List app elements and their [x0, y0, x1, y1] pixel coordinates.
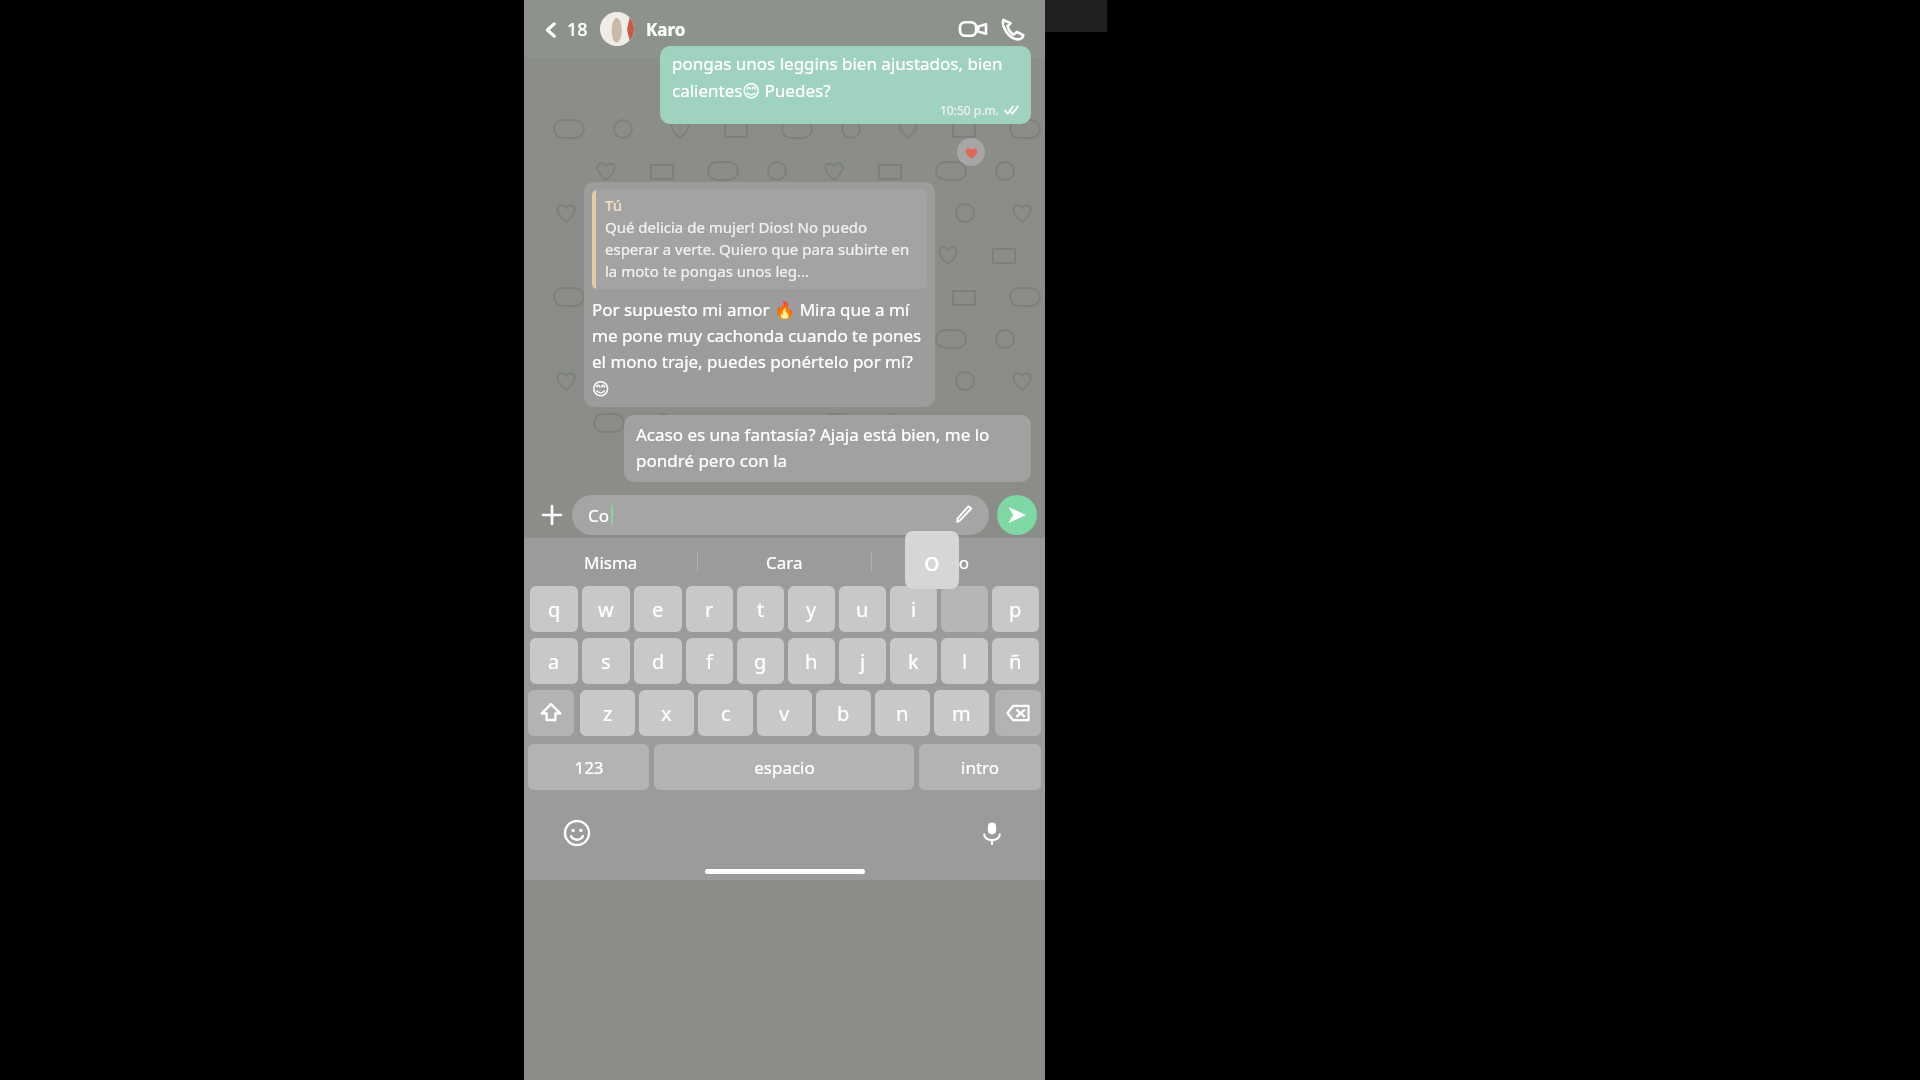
- button[interactable]: x: [639, 690, 694, 736]
- staticText: Misma: [584, 551, 638, 574]
- button[interactable]: h: [788, 638, 835, 684]
- staticText: Co: [588, 504, 610, 527]
- button[interactable]: Co: [872, 538, 1045, 586]
- staticText: Karo: [646, 18, 686, 41]
- button[interactable]: Co: [572, 495, 989, 535]
- button[interactable]: Send: [997, 495, 1037, 535]
- staticText: d: [652, 648, 665, 675]
- button[interactable]: n: [875, 690, 930, 736]
- staticText: f: [706, 648, 713, 675]
- staticText: y: [806, 596, 817, 623]
- button[interactable]: intro: [919, 744, 1041, 790]
- staticText: z: [603, 700, 613, 727]
- button[interactable]: [957, 138, 985, 166]
- button[interactable]: r: [686, 586, 733, 632]
- button[interactable]: z: [580, 690, 635, 736]
- button[interactable]: Emoji: [560, 816, 594, 850]
- button[interactable]: g: [737, 638, 784, 684]
- button[interactable]: i: [890, 586, 937, 632]
- button[interactable]: p: [992, 586, 1039, 632]
- button[interactable]: a: [530, 638, 578, 684]
- button[interactable]: s: [582, 638, 630, 684]
- staticText: u: [856, 596, 869, 623]
- staticText: intro: [961, 756, 999, 779]
- button[interactable]: Video call: [953, 9, 993, 49]
- button[interactable]: Acaso es una fantasía? Ajaja está bien, …: [624, 415, 1031, 482]
- button[interactable]: Edit: [949, 500, 979, 530]
- button[interactable]: l: [941, 638, 988, 684]
- button[interactable]: b: [816, 690, 871, 736]
- staticText: Co: [948, 551, 970, 574]
- button[interactable]: q: [530, 586, 578, 632]
- staticText: ñ: [1009, 648, 1022, 675]
- button[interactable]: m: [934, 690, 989, 736]
- button[interactable]: [941, 586, 988, 632]
- staticText: s: [601, 648, 611, 675]
- staticText: q: [548, 596, 561, 623]
- staticText: 18: [567, 17, 588, 42]
- staticText: e: [652, 596, 664, 623]
- button[interactable]: Backspace: [995, 690, 1041, 736]
- staticText: x: [661, 700, 672, 727]
- button[interactable]: Karo: [600, 12, 953, 46]
- staticText: v: [779, 700, 790, 727]
- button[interactable]: t: [737, 586, 784, 632]
- button[interactable]: Cara: [698, 538, 871, 586]
- button[interactable]: j: [839, 638, 886, 684]
- button[interactable]: espacio: [654, 744, 914, 790]
- staticText: Por supuesto mi amor 🔥 Mira que a mí me …: [592, 298, 927, 399]
- button[interactable]: k: [890, 638, 937, 684]
- button[interactable]: e: [634, 586, 682, 632]
- button[interactable]: ñ: [992, 638, 1039, 684]
- staticText: h: [805, 648, 818, 675]
- staticText: Tú: [605, 195, 623, 215]
- staticText: w: [598, 596, 614, 623]
- button[interactable]: c: [698, 690, 753, 736]
- staticText: 10:50 p.m.: [940, 102, 999, 118]
- staticText: o: [924, 543, 940, 578]
- staticText: n: [896, 700, 909, 727]
- staticText: p: [1009, 596, 1022, 623]
- staticText: c: [721, 700, 731, 727]
- button[interactable]: 123: [528, 744, 649, 790]
- staticText: r: [705, 596, 714, 623]
- button[interactable]: Dictation: [975, 816, 1009, 850]
- button[interactable]: Voice call: [993, 9, 1033, 49]
- staticText: k: [908, 648, 919, 675]
- staticText: a: [548, 648, 560, 675]
- button[interactable]: Attach: [532, 495, 572, 535]
- button[interactable]: d: [634, 638, 682, 684]
- staticText: pongas unos leggins bien ajustados, bien…: [672, 52, 1021, 102]
- button[interactable]: Shift: [528, 690, 574, 736]
- staticText: g: [754, 648, 767, 675]
- staticText: espacio: [754, 756, 815, 779]
- button[interactable]: Back, 18 unread: [536, 11, 594, 48]
- button[interactable]: v: [757, 690, 812, 736]
- button[interactable]: w: [582, 586, 630, 632]
- button[interactable]: Misma: [524, 538, 697, 586]
- button[interactable]: f: [686, 638, 733, 684]
- button[interactable]: y: [788, 586, 835, 632]
- staticText: l: [962, 648, 968, 675]
- staticText: b: [837, 700, 850, 727]
- staticText: Cara: [766, 551, 803, 574]
- staticText: j: [860, 648, 866, 675]
- staticText: t: [757, 596, 765, 623]
- staticText: Acaso es una fantasía? Ajaja está bien, …: [636, 423, 1019, 472]
- button[interactable]: Tú: [584, 182, 935, 407]
- button[interactable]: pongas unos leggins bien ajustados, bien…: [660, 46, 1031, 124]
- staticText: 123: [574, 756, 604, 779]
- staticText: m: [952, 700, 971, 727]
- button[interactable]: u: [839, 586, 886, 632]
- staticText: Qué delicia de mujer! Dios! No puedo esp…: [605, 217, 919, 282]
- staticText: i: [911, 596, 917, 623]
